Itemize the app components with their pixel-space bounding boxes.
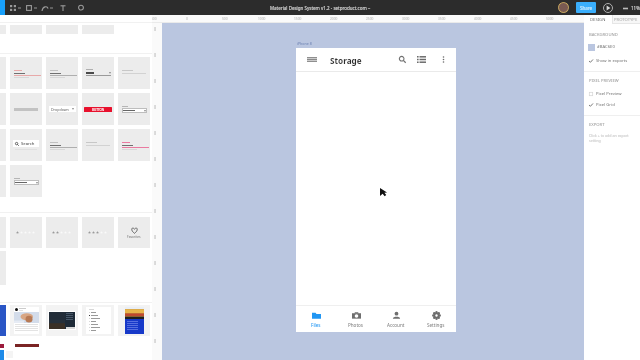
staticText: Settings [427, 322, 445, 328]
button[interactable]: Share [576, 2, 596, 13]
button[interactable]: More options [436, 48, 450, 71]
staticText: PROTOTYPE [614, 17, 638, 23]
staticText: 0 [186, 17, 188, 21]
staticText: 4500 [510, 17, 518, 21]
staticText: Search [21, 141, 35, 147]
staticText: Storage [330, 55, 362, 66]
button[interactable]: Settings [416, 306, 456, 332]
button[interactable]: Navigation menu [305, 48, 319, 71]
button[interactable]: BUTTON [84, 107, 112, 112]
button[interactable]: Comment tool [74, 0, 88, 15]
staticText: Favorites [127, 235, 141, 239]
staticText: BACKGROUND [589, 32, 618, 38]
button[interactable]: PROTOTYPE [612, 15, 640, 24]
staticText: #BAC6E0 [597, 44, 615, 50]
button[interactable]: Move tool [8, 0, 22, 15]
staticText: 4000 [474, 17, 482, 21]
staticText: 11% [631, 5, 640, 11]
button[interactable]: Present [602, 2, 613, 13]
staticText: PIXEL PREVIEW [589, 78, 619, 84]
staticText: 2000 [330, 17, 338, 21]
staticText: 3500 [438, 17, 446, 21]
staticText: Photos [348, 322, 364, 328]
button[interactable]: Zoom out [621, 4, 629, 12]
button[interactable]: Search [395, 48, 409, 71]
button[interactable]: Pixel Preview [584, 90, 640, 97]
staticText: Show in exports [596, 58, 628, 64]
staticText: 1500 [294, 17, 302, 21]
staticText: -500 [150, 17, 157, 21]
staticText: DESIGN [590, 17, 606, 23]
staticText: 2500 [366, 17, 374, 21]
button[interactable]: Text tool [56, 0, 70, 15]
button[interactable]: Frame tool [24, 0, 38, 15]
staticText: 500 [222, 17, 228, 21]
staticText: Files [311, 322, 321, 328]
staticText: Pixel Grid [596, 102, 615, 108]
staticText: 5000 [546, 17, 554, 21]
button[interactable]: Pen tool [40, 0, 54, 15]
button[interactable]: #BAC6E0 [588, 43, 638, 51]
staticText: BUTTON [92, 108, 105, 112]
staticText: iPhone 8 [297, 41, 312, 46]
button[interactable]: Account avatar [558, 2, 569, 13]
staticText: Material Design System v1.2 - setproduct… [270, 5, 371, 11]
button[interactable]: Show in exports [584, 57, 640, 64]
staticText: Dropdown [51, 107, 69, 112]
staticText: Account [387, 322, 405, 328]
button[interactable]: Pixel Grid [584, 101, 640, 108]
button[interactable]: Files [296, 306, 336, 332]
staticText: 1000 [258, 17, 266, 21]
button[interactable]: List view [414, 48, 428, 71]
staticText: Click + to add an export setting [589, 133, 640, 143]
staticText: EXPORT [589, 122, 605, 128]
staticText: Share [580, 5, 593, 11]
button[interactable]: DESIGN [584, 15, 612, 24]
staticText: Pixel Preview [596, 91, 622, 97]
button[interactable]: Account [376, 306, 416, 332]
button[interactable]: Photos [336, 306, 376, 332]
staticText: 3000 [402, 17, 410, 21]
